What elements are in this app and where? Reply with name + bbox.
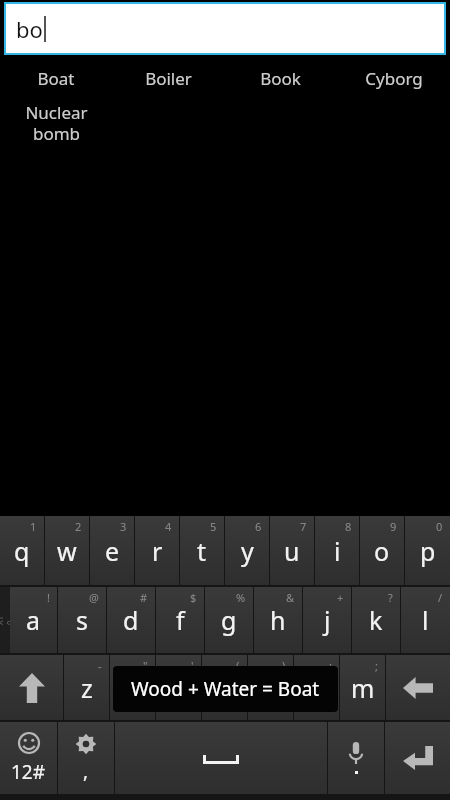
- staticText: 8: [345, 519, 352, 534]
- button[interactable]: h: [254, 587, 302, 653]
- staticText: j: [324, 603, 331, 637]
- staticText: /: [438, 590, 443, 605]
- button[interactable]: q: [0, 516, 44, 585]
- button[interactable]: Cyborg: [337, 63, 450, 93]
- staticText: x: [126, 671, 140, 705]
- button[interactable]: j: [303, 587, 351, 653]
- button[interactable]: m: [340, 655, 385, 720]
- button[interactable]: Enter: [385, 722, 450, 794]
- button[interactable]: Symbols 12#: [0, 722, 57, 794]
- staticText: bo: [16, 14, 43, 44]
- staticText: r: [152, 534, 163, 568]
- staticText: a: [26, 603, 41, 637]
- staticText: 12#: [11, 759, 46, 785]
- button[interactable]: u: [270, 516, 314, 585]
- staticText: y: [241, 534, 254, 568]
- button[interactable]: z: [64, 655, 109, 720]
- button[interactable]: b: [248, 655, 293, 720]
- staticText: o: [374, 534, 390, 568]
- staticText: l: [422, 603, 429, 637]
- staticText: %: [236, 590, 246, 605]
- button[interactable]: Boiler: [112, 63, 224, 93]
- staticText: g: [221, 603, 237, 637]
- staticText: f: [176, 603, 185, 637]
- button[interactable]: f: [156, 587, 204, 653]
- staticText: h: [270, 603, 286, 637]
- button[interactable]: Space: [115, 722, 327, 794]
- button[interactable]: g: [205, 587, 253, 653]
- staticText: b: [263, 671, 279, 705]
- button[interactable]: p: [405, 516, 450, 585]
- staticText: c: [172, 671, 185, 705]
- staticText: e: [105, 534, 120, 568]
- staticText: Nuclear bomb: [25, 101, 88, 145]
- staticText: XT9: [0, 615, 16, 625]
- staticText: Wood + Water = Boat: [131, 676, 320, 702]
- button[interactable]: Voice input: [328, 722, 384, 794]
- button[interactable]: v: [202, 655, 247, 720]
- button[interactable]: n: [294, 655, 339, 720]
- staticText: 1: [30, 519, 37, 534]
- button[interactable]: Boat: [0, 63, 112, 93]
- staticText: !: [47, 590, 50, 605]
- staticText: z: [81, 671, 93, 705]
- staticText: 6: [255, 519, 262, 534]
- staticText: ?: [388, 590, 393, 605]
- button[interactable]: r: [135, 516, 179, 585]
- staticText: Boiler: [145, 67, 192, 90]
- staticText: 2: [75, 519, 82, 534]
- button[interactable]: bo: [4, 2, 446, 55]
- button[interactable]: w: [45, 516, 89, 585]
- button[interactable]: Shift: [0, 655, 63, 720]
- staticText: :: [329, 658, 332, 673]
- button[interactable]: e: [90, 516, 134, 585]
- button[interactable]: t: [180, 516, 224, 585]
- staticText: ): [282, 658, 286, 673]
- staticText: ;: [375, 658, 378, 673]
- staticText: v: [218, 671, 231, 705]
- button[interactable]: k: [352, 587, 400, 653]
- staticText: 4: [165, 519, 172, 534]
- staticText: t: [197, 534, 207, 568]
- staticText: Book: [260, 67, 301, 90]
- staticText: -: [98, 658, 102, 673]
- button[interactable]: i: [315, 516, 359, 585]
- staticText: p: [420, 534, 436, 568]
- staticText: k: [369, 603, 383, 637]
- button[interactable]: Nuclear bomb: [0, 101, 112, 145]
- staticText: 3: [120, 519, 127, 534]
- button[interactable]: a: [10, 587, 57, 653]
- staticText: (: [236, 658, 240, 673]
- staticText: ': [191, 658, 194, 673]
- staticText: n: [309, 671, 325, 705]
- staticText: w: [57, 534, 77, 568]
- staticText: ,: [83, 758, 89, 784]
- staticText: &: [286, 590, 295, 605]
- staticText: 7: [300, 519, 307, 534]
- staticText: m: [351, 671, 375, 705]
- button[interactable]: l: [401, 587, 450, 653]
- staticText: 0: [436, 519, 443, 534]
- button[interactable]: Book: [224, 63, 337, 93]
- staticText: Cyborg: [365, 67, 423, 90]
- staticText: ": [143, 658, 148, 673]
- staticText: s: [76, 603, 88, 637]
- button[interactable]: Backspace: [386, 655, 450, 720]
- staticText: @: [89, 590, 99, 605]
- staticText: 9: [390, 519, 397, 534]
- button[interactable]: c: [156, 655, 201, 720]
- staticText: #: [140, 590, 148, 605]
- button[interactable]: o: [360, 516, 404, 585]
- button[interactable]: Settings: [58, 722, 114, 794]
- staticText: d: [123, 603, 139, 637]
- button[interactable]: x: [110, 655, 155, 720]
- staticText: q: [14, 534, 30, 568]
- staticText: +: [337, 590, 344, 605]
- staticText: u: [284, 534, 300, 568]
- staticText: 5: [210, 519, 217, 534]
- button[interactable]: y: [225, 516, 269, 585]
- staticText: Boat: [37, 67, 75, 90]
- button[interactable]: d: [107, 587, 155, 653]
- staticText: $: [190, 590, 197, 605]
- button[interactable]: s: [58, 587, 106, 653]
